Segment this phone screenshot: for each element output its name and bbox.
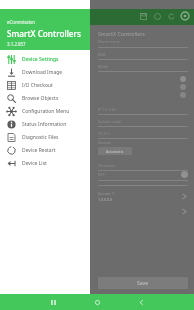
button[interactable]: Status Information [0, 118, 90, 131]
staticText: Configuration Menu [22, 108, 70, 115]
staticText: Download Image [22, 69, 63, 76]
staticText: Device name [98, 39, 120, 44]
button[interactable]: Save [136, 9, 150, 23]
button[interactable]: Configuration Menu [0, 105, 90, 118]
button[interactable]: Help [150, 9, 164, 23]
button[interactable]: I/O Checkout [0, 79, 90, 92]
staticText: MAC [98, 52, 107, 57]
staticText: Subnet mask [98, 119, 122, 124]
staticText: I/O Checkout [22, 82, 53, 89]
button[interactable]: Device List [0, 157, 90, 170]
button[interactable]: Device Settings [0, 53, 90, 66]
button[interactable] [98, 91, 188, 99]
staticText: Diagnostic Files [22, 134, 59, 141]
button[interactable]: Automatic [98, 147, 132, 155]
staticText: SmartX Controllers [7, 28, 82, 39]
staticText: IP 10.1.34 [98, 107, 116, 112]
other: Expand [181, 193, 188, 200]
button[interactable]: Device Restart [0, 144, 90, 157]
staticText: Timezone [98, 163, 116, 168]
button[interactable]: Save [98, 277, 188, 289]
staticText: Server 1 [98, 191, 115, 197]
button[interactable]: Recents [46, 295, 60, 309]
button[interactable]: Server 1 [98, 191, 188, 202]
button[interactable]: Back [134, 295, 148, 309]
staticText: Browse Objects [22, 95, 59, 102]
button[interactable] [98, 83, 188, 91]
staticText: Mode [98, 64, 109, 69]
button[interactable] [98, 75, 188, 83]
staticText: Device Settings [22, 56, 59, 63]
button[interactable]: Browse Objects [0, 92, 90, 105]
button[interactable]: Diagnostic Files [0, 131, 90, 144]
button[interactable]: Home [90, 295, 104, 309]
staticText: Automatic [106, 149, 124, 154]
staticText: Save [137, 280, 149, 287]
staticText: Device Restart [22, 147, 56, 154]
staticText: 10.10.1 [98, 131, 111, 136]
button[interactable]: Download Image [0, 66, 90, 79]
staticText: 1.0.0.0.0 [98, 197, 113, 202]
staticText: Domain [98, 140, 112, 145]
staticText: eCommission [7, 19, 35, 25]
staticText: SmartX Controllers [98, 30, 145, 37]
staticText: Status Information [22, 121, 67, 128]
button[interactable]: Settings [178, 9, 192, 23]
staticText: NTP [98, 172, 105, 177]
button[interactable]: Refresh [164, 9, 178, 23]
staticText: 3.1.2.857 [7, 41, 26, 47]
staticText: Device List [22, 160, 47, 167]
